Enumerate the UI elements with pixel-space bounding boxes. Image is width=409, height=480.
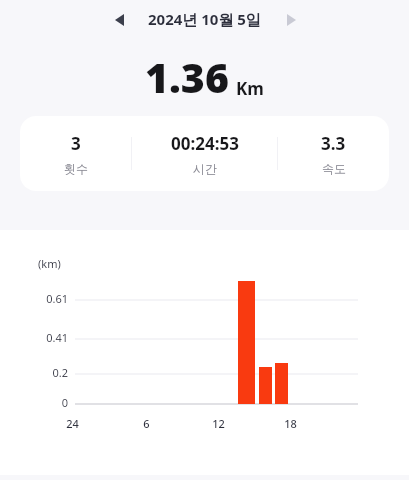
staticText: 0.61 [46, 291, 68, 306]
staticText: 00:24:53 [171, 132, 239, 155]
staticText: 24 [66, 416, 79, 431]
staticText: Km [236, 77, 264, 100]
button[interactable]: 다음 날짜 [278, 7, 304, 33]
staticText: 0.41 [46, 330, 68, 345]
staticText: 2024년 10월 5일 [148, 9, 261, 29]
button[interactable]: 3 [20, 116, 389, 191]
staticText: 18 [284, 416, 297, 431]
button[interactable]: 이전 날짜 [106, 7, 132, 33]
staticText: (km) [38, 256, 61, 271]
staticText: 속도 [322, 161, 346, 176]
staticText: 0 [61, 395, 68, 410]
staticText: 0.2 [52, 365, 68, 380]
staticText: 6 [143, 416, 150, 431]
staticText: 시간 [193, 161, 217, 176]
staticText: 1.36 [145, 49, 229, 105]
staticText: 12 [212, 416, 225, 431]
staticText: 횟수 [64, 161, 88, 176]
staticText: 3 [71, 132, 81, 155]
button[interactable]: 2024년 10월 5일 [132, 4, 277, 34]
staticText: 3.3 [321, 132, 346, 155]
